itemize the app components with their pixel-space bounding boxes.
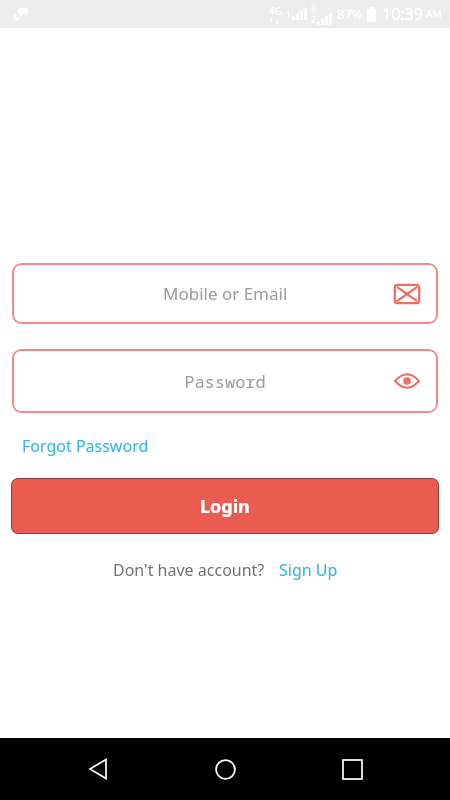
other: Email: [392, 279, 422, 309]
staticText: 2: [311, 14, 316, 25]
staticText: Don't have account?: [113, 559, 265, 581]
button[interactable]: Forgot Password: [22, 433, 149, 459]
staticText: Mobile or Email: [163, 282, 288, 305]
staticText: R: [311, 3, 316, 14]
button[interactable]: Login: [11, 478, 439, 534]
button[interactable]: Home: [197, 741, 253, 797]
button[interactable]: Recent apps: [324, 741, 380, 797]
staticText: Login: [200, 494, 250, 519]
staticText: AM: [426, 7, 442, 21]
button[interactable]: Password: [12, 349, 438, 413]
staticText: Forgot Password: [22, 435, 149, 457]
button[interactable]: Mobile or Email: [12, 263, 438, 324]
other: Show password: [392, 366, 422, 396]
button[interactable]: Sign Up: [279, 557, 338, 583]
staticText: 1: [286, 9, 291, 20]
staticText: 4G: [269, 4, 282, 18]
staticText: Password: [184, 370, 266, 393]
staticText: 87%: [337, 5, 363, 23]
staticText: 10:39: [382, 3, 423, 25]
staticText: Sign Up: [279, 559, 338, 581]
button[interactable]: Back: [71, 741, 127, 797]
